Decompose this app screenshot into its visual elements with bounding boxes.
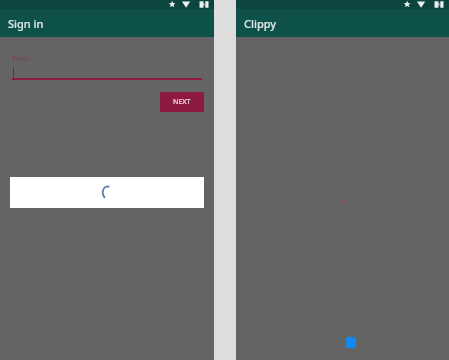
staticText: NEXT <box>173 97 191 107</box>
button[interactable]: NEXT <box>160 92 204 112</box>
staticText: Sign in <box>8 16 44 31</box>
button[interactable]: Email <box>12 54 202 80</box>
staticText: Clippy <box>244 16 277 31</box>
staticText: Email <box>12 54 30 64</box>
button[interactable]: Action <box>346 337 356 348</box>
